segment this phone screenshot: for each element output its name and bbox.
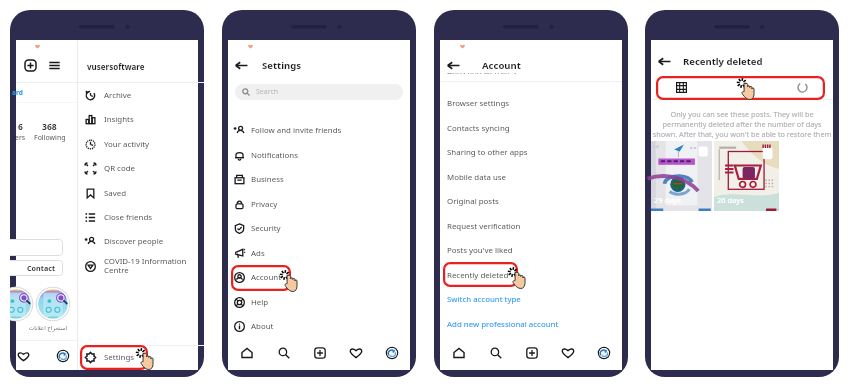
button[interactable]: New post bbox=[24, 59, 37, 72]
staticText: Saved bbox=[104, 188, 127, 199]
button[interactable]: Mobile data use bbox=[440, 166, 622, 188]
button[interactable]: Back bbox=[235, 59, 248, 72]
staticText: Follow and invite friends bbox=[251, 125, 342, 136]
staticText: 26 days bbox=[717, 195, 744, 205]
button[interactable]: Home bbox=[440, 342, 477, 364]
button[interactable]: Menu bbox=[48, 59, 61, 72]
staticText: Security bbox=[251, 223, 281, 234]
staticText: Search bbox=[256, 87, 279, 97]
button[interactable]: Search bbox=[235, 84, 403, 100]
button[interactable]: Switch account type bbox=[440, 288, 622, 310]
button[interactable]: Help bbox=[228, 291, 410, 313]
staticText: Only you can see these posts. They will … bbox=[651, 109, 833, 139]
button[interactable]: Recently deleted bbox=[440, 264, 622, 286]
button[interactable]: 26 days bbox=[714, 141, 779, 211]
button[interactable]: Posts you've liked bbox=[440, 239, 622, 261]
button[interactable]: Your activity bbox=[78, 133, 204, 155]
button[interactable]: Back bbox=[658, 55, 671, 68]
button[interactable]: About bbox=[228, 315, 410, 337]
button[interactable]: Account bbox=[228, 266, 410, 288]
staticText: Close friends bbox=[104, 212, 153, 223]
button[interactable]: Search bbox=[265, 342, 302, 364]
staticText: Settings bbox=[262, 59, 301, 72]
button[interactable]: Archive bbox=[78, 84, 204, 106]
staticText: vusersoftware bbox=[87, 61, 145, 72]
button[interactable]: New post bbox=[302, 342, 338, 364]
button[interactable]: Browser settings bbox=[440, 92, 622, 114]
staticText: Switch account type bbox=[447, 294, 521, 305]
staticText: Contacts syncing bbox=[447, 123, 510, 134]
staticText: Privacy bbox=[251, 199, 278, 210]
staticText: استخراج اعلانات bbox=[29, 324, 68, 332]
button[interactable]: COVID-19 Information Centre bbox=[78, 255, 204, 277]
button[interactable]: Back bbox=[447, 59, 460, 72]
button[interactable]: Follow and invite friends bbox=[228, 119, 410, 141]
staticText: Following bbox=[34, 133, 66, 143]
button[interactable]: Search bbox=[477, 342, 514, 364]
button[interactable]: QR code bbox=[78, 157, 204, 179]
button[interactable]: Discover people bbox=[78, 230, 204, 252]
staticText: Apps and websites bbox=[447, 73, 517, 74]
staticText: Browser settings bbox=[447, 98, 510, 109]
staticText: QR code bbox=[104, 163, 135, 174]
staticText: ard bbox=[12, 88, 23, 97]
button[interactable]: Ads bbox=[228, 242, 410, 264]
button[interactable]: Contacts syncing bbox=[440, 117, 622, 139]
button[interactable]: Saved bbox=[78, 182, 204, 204]
button[interactable]: Original posts bbox=[440, 190, 622, 212]
staticText: Help bbox=[251, 297, 269, 308]
button[interactable]: Insights bbox=[78, 108, 204, 130]
staticText: Archive bbox=[104, 90, 132, 101]
staticText: Posts you've liked bbox=[447, 245, 513, 256]
staticText: Ads bbox=[251, 248, 265, 259]
button[interactable]: Privacy bbox=[228, 193, 410, 215]
button[interactable]: New post bbox=[514, 342, 550, 364]
button[interactable]: Request verification bbox=[440, 215, 622, 237]
staticText: About bbox=[251, 321, 274, 332]
staticText: COVID-19 Information Centre bbox=[104, 256, 187, 276]
button[interactable]: Security bbox=[228, 217, 410, 239]
staticText: Business bbox=[251, 174, 284, 185]
staticText: Your activity bbox=[104, 139, 150, 150]
button[interactable] bbox=[10, 239, 63, 256]
staticText: Settings bbox=[104, 352, 135, 363]
button[interactable] bbox=[35, 286, 71, 322]
button[interactable]: Profile bbox=[52, 345, 74, 367]
button[interactable]: Activity bbox=[12, 345, 34, 367]
staticText: ers bbox=[15, 133, 26, 143]
button[interactable]: Profile bbox=[586, 342, 622, 364]
button[interactable]: Home bbox=[228, 342, 265, 364]
staticText: Insights bbox=[104, 114, 134, 125]
staticText: 29 days bbox=[654, 195, 681, 205]
button[interactable]: Sharing to other apps bbox=[440, 141, 622, 163]
staticText: Contact bbox=[27, 263, 56, 273]
staticText: Account bbox=[482, 59, 521, 72]
button[interactable]: Grid view bbox=[651, 76, 711, 98]
button[interactable]: Activity bbox=[550, 342, 586, 364]
staticText: Original posts bbox=[447, 196, 499, 207]
button[interactable]: Add new professional account bbox=[440, 313, 622, 335]
button[interactable] bbox=[10, 286, 34, 322]
staticText: Add new professional account bbox=[447, 319, 559, 330]
button[interactable]: Activity bbox=[338, 342, 374, 364]
staticText: Notifications bbox=[251, 150, 298, 161]
staticText: Recently deleted bbox=[683, 55, 763, 68]
button[interactable]: Reels bbox=[711, 76, 772, 98]
button[interactable]: Notifications bbox=[228, 144, 410, 166]
button[interactable]: Business bbox=[228, 168, 410, 190]
staticText: Account bbox=[251, 272, 281, 283]
staticText: Request verification bbox=[447, 221, 521, 232]
staticText: Sharing to other apps bbox=[447, 147, 528, 158]
staticText: Discover people bbox=[104, 236, 164, 247]
staticText: Mobile data use bbox=[447, 172, 507, 183]
button[interactable]: Profile bbox=[374, 342, 410, 364]
button[interactable]: Settings bbox=[78, 346, 204, 368]
button[interactable]: 29 days bbox=[651, 141, 712, 211]
button[interactable]: Close friends bbox=[78, 206, 204, 228]
staticText: Recently deleted bbox=[447, 270, 509, 281]
staticText: 6 bbox=[18, 121, 23, 133]
button[interactable]: Contact bbox=[10, 260, 63, 276]
staticText: 368 bbox=[42, 121, 57, 133]
button[interactable]: Stories bbox=[772, 76, 833, 98]
